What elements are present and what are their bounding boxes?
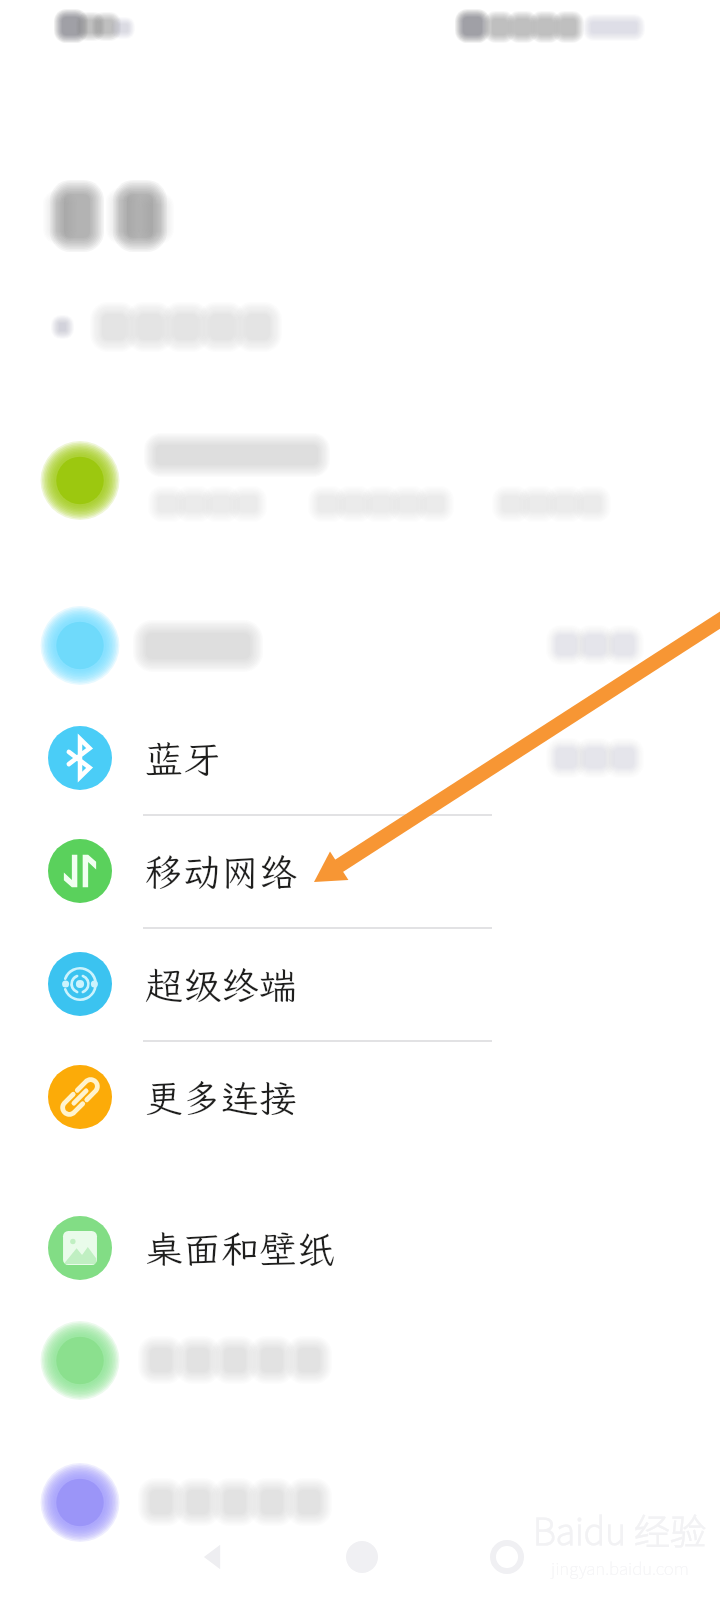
button[interactable]: 超级终端 — [0, 928, 720, 1041]
button[interactable] — [0, 1446, 720, 1559]
button[interactable] — [0, 424, 720, 537]
button[interactable]: 蓝牙 — [0, 702, 720, 815]
button[interactable]: 移动网络 — [0, 815, 720, 928]
button[interactable]: 桌面和壁纸 — [0, 1192, 720, 1305]
staticText: Baidu 经验 — [533, 1503, 706, 1555]
staticText: 桌面和壁纸 — [145, 1224, 336, 1274]
button[interactable]: Home — [332, 1527, 392, 1587]
button[interactable]: Back — [182, 1527, 242, 1587]
staticText: 超级终端 — [145, 960, 298, 1010]
button[interactable]: Recent apps — [477, 1527, 537, 1587]
staticText: 蓝牙 — [145, 734, 222, 784]
button[interactable]: 更多连接 — [0, 1041, 720, 1154]
staticText: 移动网络 — [145, 847, 298, 897]
button[interactable] — [0, 1304, 720, 1417]
button[interactable] — [0, 589, 720, 702]
staticText: 更多连接 — [145, 1073, 298, 1123]
